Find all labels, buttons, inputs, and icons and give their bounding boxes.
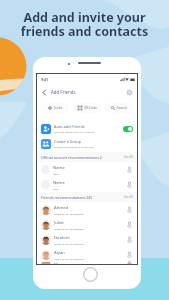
button[interactable]: Add friend (126, 262, 133, 264)
staticText: Added by You by Facebook (54, 242, 84, 245)
staticText: Ibrahim (54, 235, 70, 241)
staticText: Topic (53, 172, 59, 175)
button[interactable]: Juliet (37, 217, 137, 232)
staticText: Juliet (54, 220, 64, 226)
button[interactable]: Name (37, 162, 137, 177)
button[interactable]: Add friend (126, 206, 133, 213)
staticText: Ahmed (54, 205, 69, 211)
button[interactable]: Invite (40, 103, 70, 113)
button[interactable]: QR Code (73, 103, 102, 113)
button[interactable]: Ahmed (37, 202, 137, 217)
staticText: Add Friends (51, 89, 76, 95)
button[interactable]: Ibrahim (37, 232, 137, 247)
staticText: Official account recommendations 2 (41, 155, 102, 160)
button[interactable]: Name (37, 177, 137, 192)
staticText: 9:41 (41, 77, 49, 82)
button[interactable]: Settings (126, 89, 133, 96)
staticText: Invite (54, 106, 63, 110)
staticText: Friends recommendations 245 (41, 195, 93, 200)
button[interactable]: Add friend (126, 181, 133, 188)
button[interactable]: Add friend (126, 251, 133, 258)
button[interactable]: Search (105, 103, 134, 113)
staticText: Create a Group (54, 139, 82, 144)
button[interactable]: Add friend (126, 166, 133, 173)
staticText: Added by You by Facebook (54, 257, 84, 260)
button[interactable]: Create a Group (37, 136, 137, 151)
button[interactable]: Add friend (126, 221, 133, 228)
staticText: QR Code (84, 106, 98, 110)
staticText: Search (117, 106, 128, 110)
button[interactable]: Back (41, 89, 48, 96)
staticText: Auto add friends from your contacts (54, 130, 95, 133)
button[interactable]: Mayar (37, 262, 137, 264)
button[interactable]: Add friend (126, 236, 133, 243)
staticText: Topic (53, 187, 59, 190)
staticText: Alyan (54, 250, 65, 256)
staticText: See All (124, 155, 133, 159)
staticText: See All (124, 195, 133, 199)
staticText: Auto-add Friends (54, 124, 85, 129)
staticText: Add and invite your friends and contacts (0, 9, 169, 40)
button[interactable]: Alyan (37, 247, 137, 262)
staticText: Added by You by Facebook (54, 212, 84, 215)
button[interactable]: Toggle (123, 126, 133, 132)
staticText: Mayar (54, 262, 67, 264)
staticText: Manage your friends in Group Chat (54, 145, 94, 148)
staticText: Name (53, 165, 65, 171)
button[interactable]: Auto-add Friends (37, 121, 137, 136)
staticText: Name (53, 180, 65, 186)
staticText: Added by You by Facebook (54, 227, 84, 230)
